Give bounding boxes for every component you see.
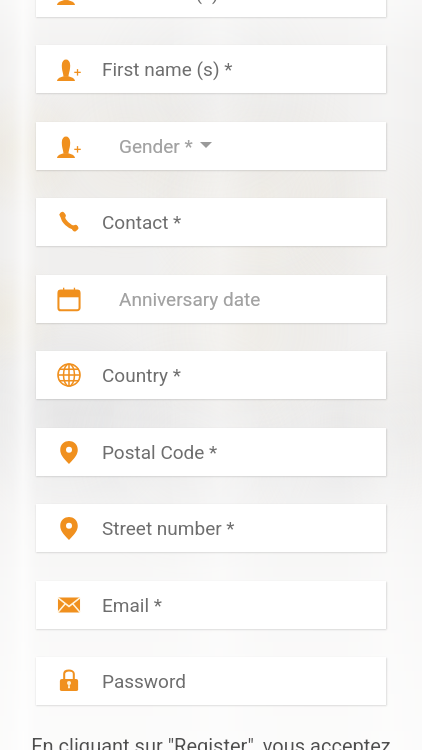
button[interactable]: Country * bbox=[36, 351, 386, 399]
staticText: Street number * bbox=[102, 517, 235, 539]
staticText: En cliquant sur "Register", vous accepte… bbox=[31, 734, 391, 750]
staticText: First name (s) * bbox=[102, 58, 233, 80]
button[interactable]: Postal Code * bbox=[36, 428, 386, 476]
staticText: Last name (s) * bbox=[102, 0, 232, 4]
button[interactable]: Contact * bbox=[36, 198, 386, 246]
button[interactable]: First name (s) * bbox=[36, 45, 386, 93]
staticText: Postal Code * bbox=[102, 441, 218, 463]
button[interactable]: Gender * bbox=[36, 122, 386, 170]
button[interactable]: Last name (s) * bbox=[36, 0, 386, 17]
button[interactable]: Email * bbox=[36, 581, 386, 629]
button[interactable]: Password bbox=[36, 657, 386, 705]
button[interactable]: Anniversary date bbox=[36, 275, 386, 323]
button[interactable]: Street number * bbox=[36, 504, 386, 552]
staticText: Contact * bbox=[102, 211, 182, 233]
staticText: Country * bbox=[102, 364, 181, 386]
staticText: Email * bbox=[102, 594, 162, 616]
staticText: Anniversary date bbox=[119, 288, 261, 310]
staticText: Gender * bbox=[119, 135, 193, 157]
staticText: Password bbox=[102, 670, 186, 692]
